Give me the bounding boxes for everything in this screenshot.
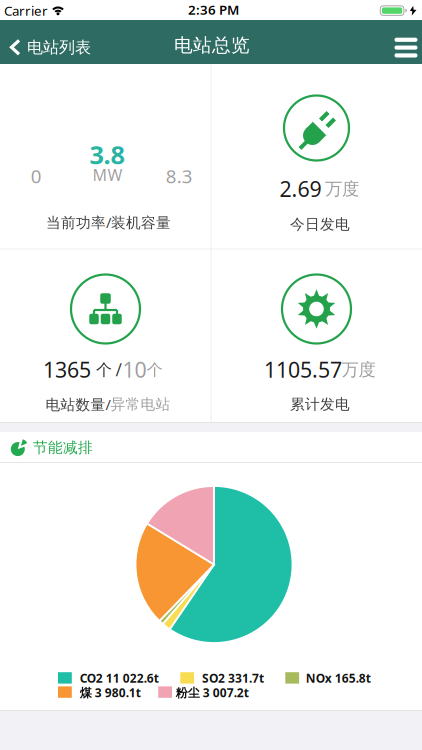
staticText: 2.69 <box>279 174 321 203</box>
staticText: 累计发电 <box>290 395 350 413</box>
staticText: 1365 <box>43 355 91 384</box>
staticText: MW <box>92 164 122 185</box>
staticText: 当前功率/装机容量 <box>46 213 171 232</box>
staticText: 粉尘 3 007.2t <box>176 685 249 700</box>
staticText: 个 <box>96 360 112 380</box>
staticText: Carrier <box>4 2 48 19</box>
staticText: 电站总览 <box>174 34 250 57</box>
staticText: 2:36 PM <box>188 1 239 18</box>
staticText: 电站列表 <box>27 37 91 57</box>
staticText: CO2 11 022.6t <box>80 670 159 686</box>
staticText: 异常电站 <box>110 395 170 413</box>
staticText: NOx 165.8t <box>306 670 371 686</box>
staticText: 万度 <box>341 359 375 380</box>
staticText: 8.3 <box>166 164 193 188</box>
staticText: 3.8 <box>89 137 124 171</box>
staticText: 煤 3 980.1t <box>80 685 141 700</box>
button[interactable]: 电站列表 <box>9 37 91 57</box>
staticText: 1105.57 <box>264 355 342 384</box>
button[interactable]: 菜单 <box>394 38 417 57</box>
staticText: 节能减排 <box>33 439 93 457</box>
staticText: 10 <box>122 355 146 384</box>
staticText: 0 <box>31 164 42 188</box>
staticText: / <box>115 358 121 381</box>
staticText: 电站数量/ <box>45 395 110 414</box>
staticText: SO2 331.7t <box>202 670 264 686</box>
staticText: 个 <box>147 360 163 380</box>
staticText: 万度 <box>325 178 359 200</box>
staticText: 今日发电 <box>290 215 350 233</box>
